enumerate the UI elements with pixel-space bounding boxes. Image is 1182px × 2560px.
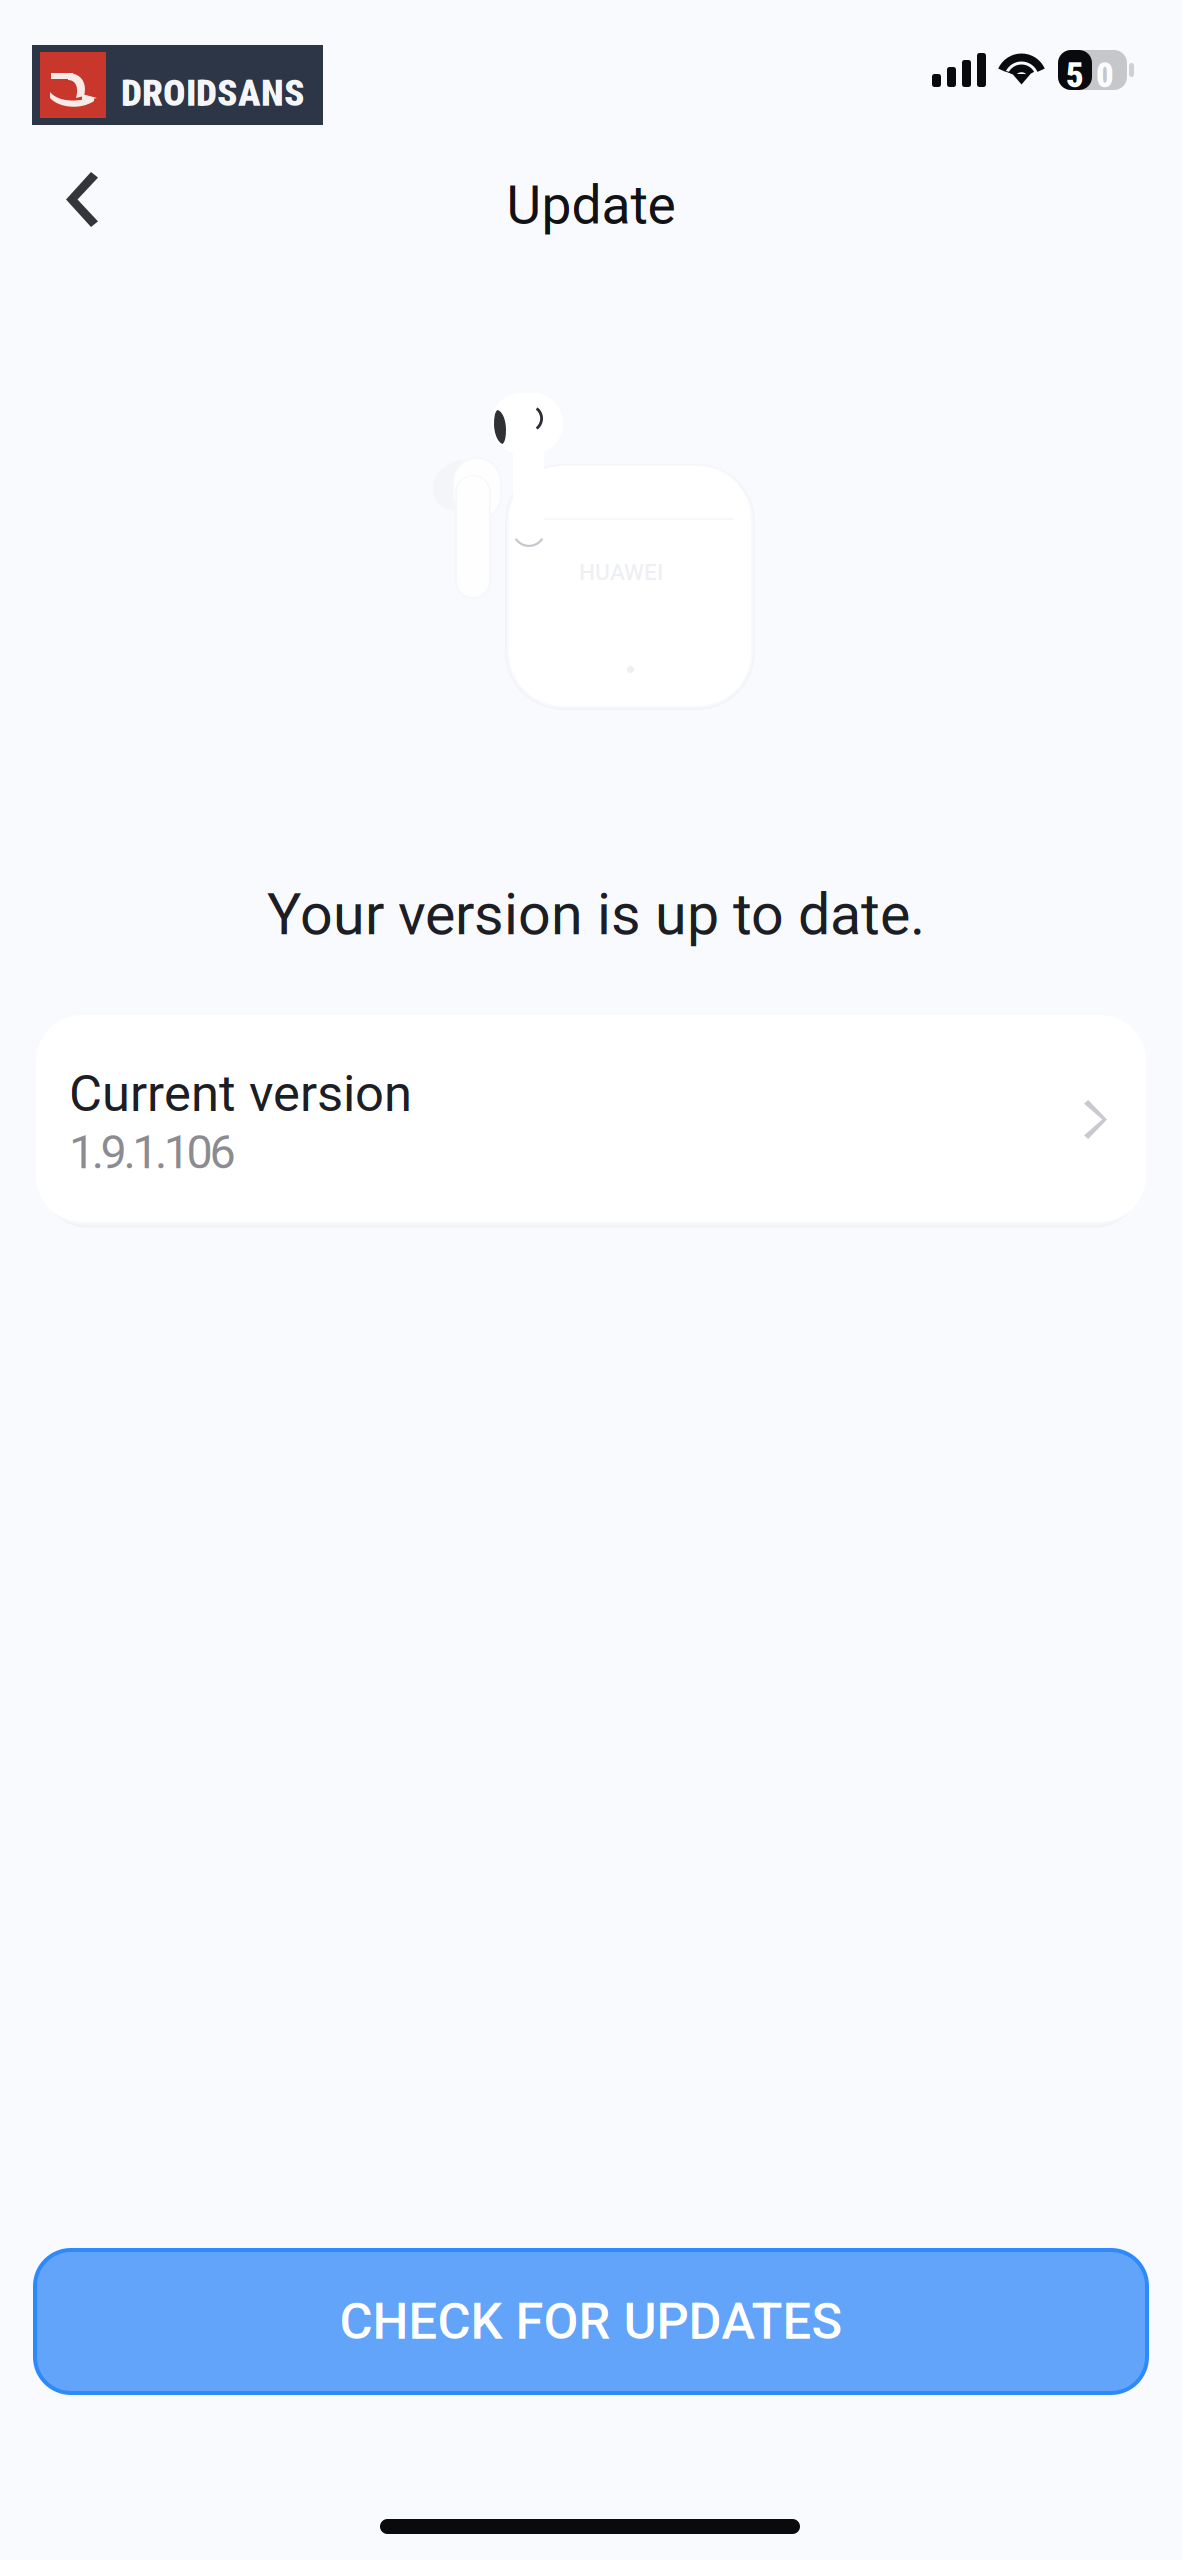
staticText: 5 [1066,55,1084,96]
button[interactable]: Back [41,147,131,252]
staticText: DROIDSANS [121,71,305,115]
staticText: Current version [69,1064,412,1123]
staticText: CHECK FOR UPDATES [339,2292,842,2351]
staticText: Your version is up to date. [267,881,925,948]
staticText: Update [506,174,675,236]
button[interactable]: CHECK FOR UPDATES [35,2250,1147,2393]
staticText: 1.9.1.106 [69,1125,235,1180]
button[interactable]: Current version [36,1015,1146,1222]
staticText: 0 [1096,55,1114,96]
staticText: HUAWEI [579,559,663,586]
